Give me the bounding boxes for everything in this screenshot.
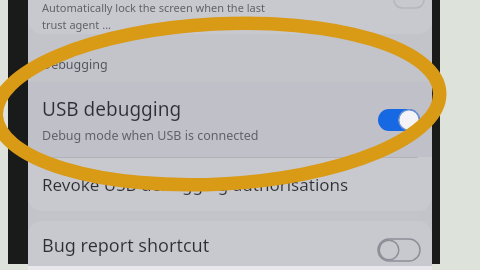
staticText: Automatically lock the screen when the l… (42, 0, 265, 15)
staticText: USB debugging (42, 96, 182, 122)
staticText: Debug mode when USB is connected (42, 127, 259, 144)
button[interactable]: Bug report shortcut off (378, 239, 420, 261)
button[interactable]: Toggle (394, 0, 424, 8)
button[interactable]: Revoke USB debugging authorisations (28, 158, 432, 211)
staticText: Show a button in the power menu for taki… (42, 263, 313, 270)
button[interactable]: Bug report shortcut (28, 221, 432, 270)
staticText: Debugging (42, 56, 108, 73)
button[interactable]: USB debugging (28, 82, 432, 157)
button[interactable]: USB debugging on (378, 109, 420, 131)
staticText: Revoke USB debugging authorisations (42, 173, 349, 196)
staticText: trust agent ... (42, 17, 112, 32)
staticText: Bug report shortcut (42, 233, 210, 258)
button[interactable]: Automatically lock the screen when the l… (28, 0, 432, 34)
